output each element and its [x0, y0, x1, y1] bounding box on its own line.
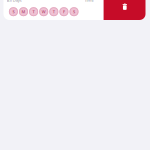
staticText: Time: [84, 0, 93, 3]
staticText: M: [21, 9, 25, 14]
button[interactable]: Delete: [104, 0, 145, 20]
staticText: S: [73, 9, 75, 14]
staticText: S: [12, 9, 14, 14]
staticText: T: [33, 9, 35, 14]
staticText: All Days: [7, 0, 22, 3]
staticText: W: [42, 9, 46, 14]
staticText: T: [53, 9, 55, 14]
staticText: F: [63, 9, 65, 14]
